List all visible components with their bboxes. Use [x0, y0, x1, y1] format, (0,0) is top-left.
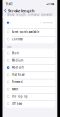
button[interactable]: Off base	[5, 100, 55, 107]
staticText: Trimmed	[12, 80, 23, 84]
button[interactable]: Most soft	[5, 64, 55, 71]
staticText: 9:41	[6, 2, 13, 6]
button[interactable]: Matte	[5, 86, 55, 93]
staticText: That Read	[12, 73, 25, 76]
staticText: Matte	[12, 87, 19, 91]
button[interactable]: Some words available	[5, 28, 55, 36]
button[interactable]: That Read	[5, 71, 55, 79]
staticText: Short	[12, 51, 19, 55]
button[interactable]	[5, 17, 55, 28]
staticText: The Top Tip	[12, 95, 28, 98]
staticText: Most soft	[12, 66, 24, 69]
staticText: Size	[7, 45, 12, 48]
button[interactable]: Medium	[5, 57, 55, 64]
button[interactable]: Stroke length	[3, 8, 36, 13]
staticText: Contrast	[12, 37, 23, 41]
button[interactable]: The Top Tip	[5, 93, 55, 100]
staticText: Some words available	[12, 30, 40, 34]
button[interactable]: Short	[5, 50, 55, 57]
button[interactable]: Contrast	[5, 36, 55, 43]
staticText: Stroke length	[8, 8, 35, 13]
staticText: Stroke length, enhance dynamics	[7, 13, 52, 16]
button[interactable]: Trimmed	[5, 79, 55, 86]
staticText: Medium	[12, 59, 23, 62]
staticText: Off base	[12, 102, 23, 105]
